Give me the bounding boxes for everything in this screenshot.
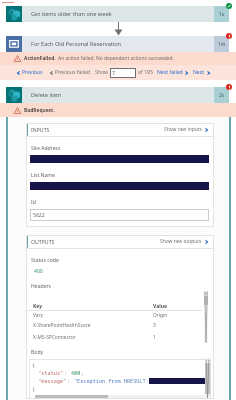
button[interactable]: Previous: [16, 69, 43, 76]
staticText: ActionFailed.: [24, 55, 56, 62]
staticText: Origin: [153, 312, 168, 319]
staticText: Status code: [31, 257, 59, 264]
staticText: Get items older than one week: [31, 10, 214, 18]
button[interactable]: 7: [110, 68, 136, 78]
staticText: 1: [153, 334, 156, 341]
staticText: Show raw outputs: [160, 238, 202, 245]
staticText: INPUTS: [31, 126, 50, 133]
staticText: Body: [31, 349, 44, 356]
staticText: :: [67, 377, 74, 384]
button[interactable]: Delete item: [6, 87, 229, 103]
staticText: 1m: [218, 41, 226, 48]
staticText: Previous: [22, 69, 43, 76]
button[interactable]: Next: [193, 69, 211, 76]
staticText: 400: [71, 369, 81, 376]
staticText: X-SharePointHealthScore: [33, 322, 153, 329]
staticText: 2s: [219, 92, 225, 99]
staticText: For Each Old Personal Reservation: [31, 40, 214, 48]
button[interactable]: INPUTS: [26, 123, 214, 136]
staticText: List Name: [31, 172, 55, 179]
staticText: "message": [32, 377, 67, 384]
button[interactable]: Previous failed: [49, 69, 90, 76]
staticText: Show raw inputs: [164, 126, 202, 133]
staticText: Key: [33, 303, 153, 310]
staticText: Next failed: [157, 69, 183, 76]
staticText: OUTPUTS: [31, 238, 55, 245]
staticText: 7: [112, 70, 115, 77]
staticText: Vary: [33, 312, 153, 319]
button[interactable]: OUTPUTS: [26, 235, 214, 248]
staticText: {: [32, 361, 36, 368]
button[interactable]: Next failed: [157, 69, 189, 76]
button[interactable]: Get items older than one week: [6, 6, 229, 22]
other: Failed: [226, 84, 232, 90]
staticText: Delete item: [31, 91, 214, 99]
staticText: of 195: [138, 69, 153, 76]
staticText: 3: [153, 322, 156, 329]
staticText: Show: [95, 69, 108, 76]
staticText: ,: [81, 369, 85, 376]
staticText: 1s: [219, 11, 225, 18]
other: Failed: [226, 33, 232, 39]
staticText: }: [32, 385, 36, 392]
staticText: Id: [31, 199, 36, 206]
staticText: An action failed. No dependent actions s…: [58, 55, 174, 62]
staticText: Site Address: [31, 145, 61, 152]
staticText: Previous failed: [55, 69, 90, 76]
staticText: BadRequest.: [24, 107, 55, 114]
staticText: :: [64, 369, 71, 376]
staticText: X-MS-SPConnector: [33, 334, 153, 341]
staticText: 400: [34, 268, 43, 275]
staticText: Headers: [31, 283, 52, 290]
button[interactable]: For Each Old Personal Reservation: [6, 36, 229, 52]
staticText: 5622: [33, 212, 45, 219]
staticText: "Exception from HRESULT:: [74, 377, 149, 384]
staticText: Value: [153, 303, 167, 310]
staticText: "status": [32, 369, 64, 376]
other: Succeeded: [226, 3, 232, 9]
staticText: Next: [193, 69, 205, 76]
